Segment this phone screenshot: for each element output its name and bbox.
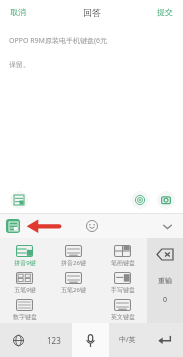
staticText: 中/英 bbox=[119, 335, 136, 345]
button[interactable]: 重输 bbox=[154, 274, 176, 287]
staticText: 笔画键盘 bbox=[111, 259, 135, 267]
staticText: 取消 bbox=[10, 7, 26, 17]
button[interactable]: Enter bbox=[146, 323, 183, 357]
button[interactable]: Preview bbox=[131, 191, 149, 209]
button[interactable]: 五笔9键 bbox=[0, 269, 49, 296]
staticText: 五笔9键 bbox=[14, 286, 36, 294]
button[interactable]: List bbox=[10, 191, 28, 209]
button[interactable]: 拼音26键 bbox=[49, 242, 98, 269]
staticText: 0 bbox=[163, 295, 168, 305]
staticText: 123 bbox=[47, 335, 61, 346]
staticText: 数字键盘 bbox=[13, 313, 37, 321]
button[interactable]: 取消 bbox=[8, 5, 28, 19]
button[interactable]: Emoji bbox=[84, 218, 100, 234]
button[interactable]: 五笔26键 bbox=[49, 269, 98, 296]
button[interactable]: Backspace bbox=[152, 246, 178, 262]
button[interactable]: 数字键盘 bbox=[0, 296, 49, 323]
staticText: 手写键盘 bbox=[111, 286, 135, 294]
staticText: 英文键盘 bbox=[111, 313, 135, 321]
button[interactable]: Switch keyboard bbox=[0, 323, 36, 357]
button[interactable]: Camera bbox=[157, 191, 175, 209]
staticText: 拼音9键 bbox=[14, 259, 36, 267]
button[interactable]: Collapse bbox=[159, 218, 175, 234]
staticText: 拼音26键 bbox=[61, 259, 86, 267]
button[interactable]: 笔画键盘 bbox=[98, 242, 147, 269]
button[interactable]: Keyboard mode bbox=[6, 219, 20, 233]
button[interactable]: 拼音9键 bbox=[0, 242, 49, 269]
button[interactable]: 0 bbox=[157, 293, 174, 307]
staticText: 重输 bbox=[158, 276, 172, 285]
button[interactable]: 123 bbox=[36, 323, 72, 357]
staticText: OPPO R9M原装电手机键盘(6元 bbox=[9, 36, 108, 46]
staticText: 保留。 bbox=[9, 60, 30, 69]
button[interactable]: 提交 bbox=[155, 5, 175, 19]
button[interactable]: 英文键盘 bbox=[98, 296, 147, 323]
staticText: 五笔26键 bbox=[61, 286, 86, 294]
button[interactable]: 中/英 bbox=[109, 323, 146, 357]
staticText: 回答 bbox=[83, 7, 101, 18]
staticText: 提交 bbox=[157, 7, 173, 17]
button[interactable]: Voice input bbox=[72, 323, 109, 357]
button[interactable]: 手写键盘 bbox=[98, 269, 147, 296]
